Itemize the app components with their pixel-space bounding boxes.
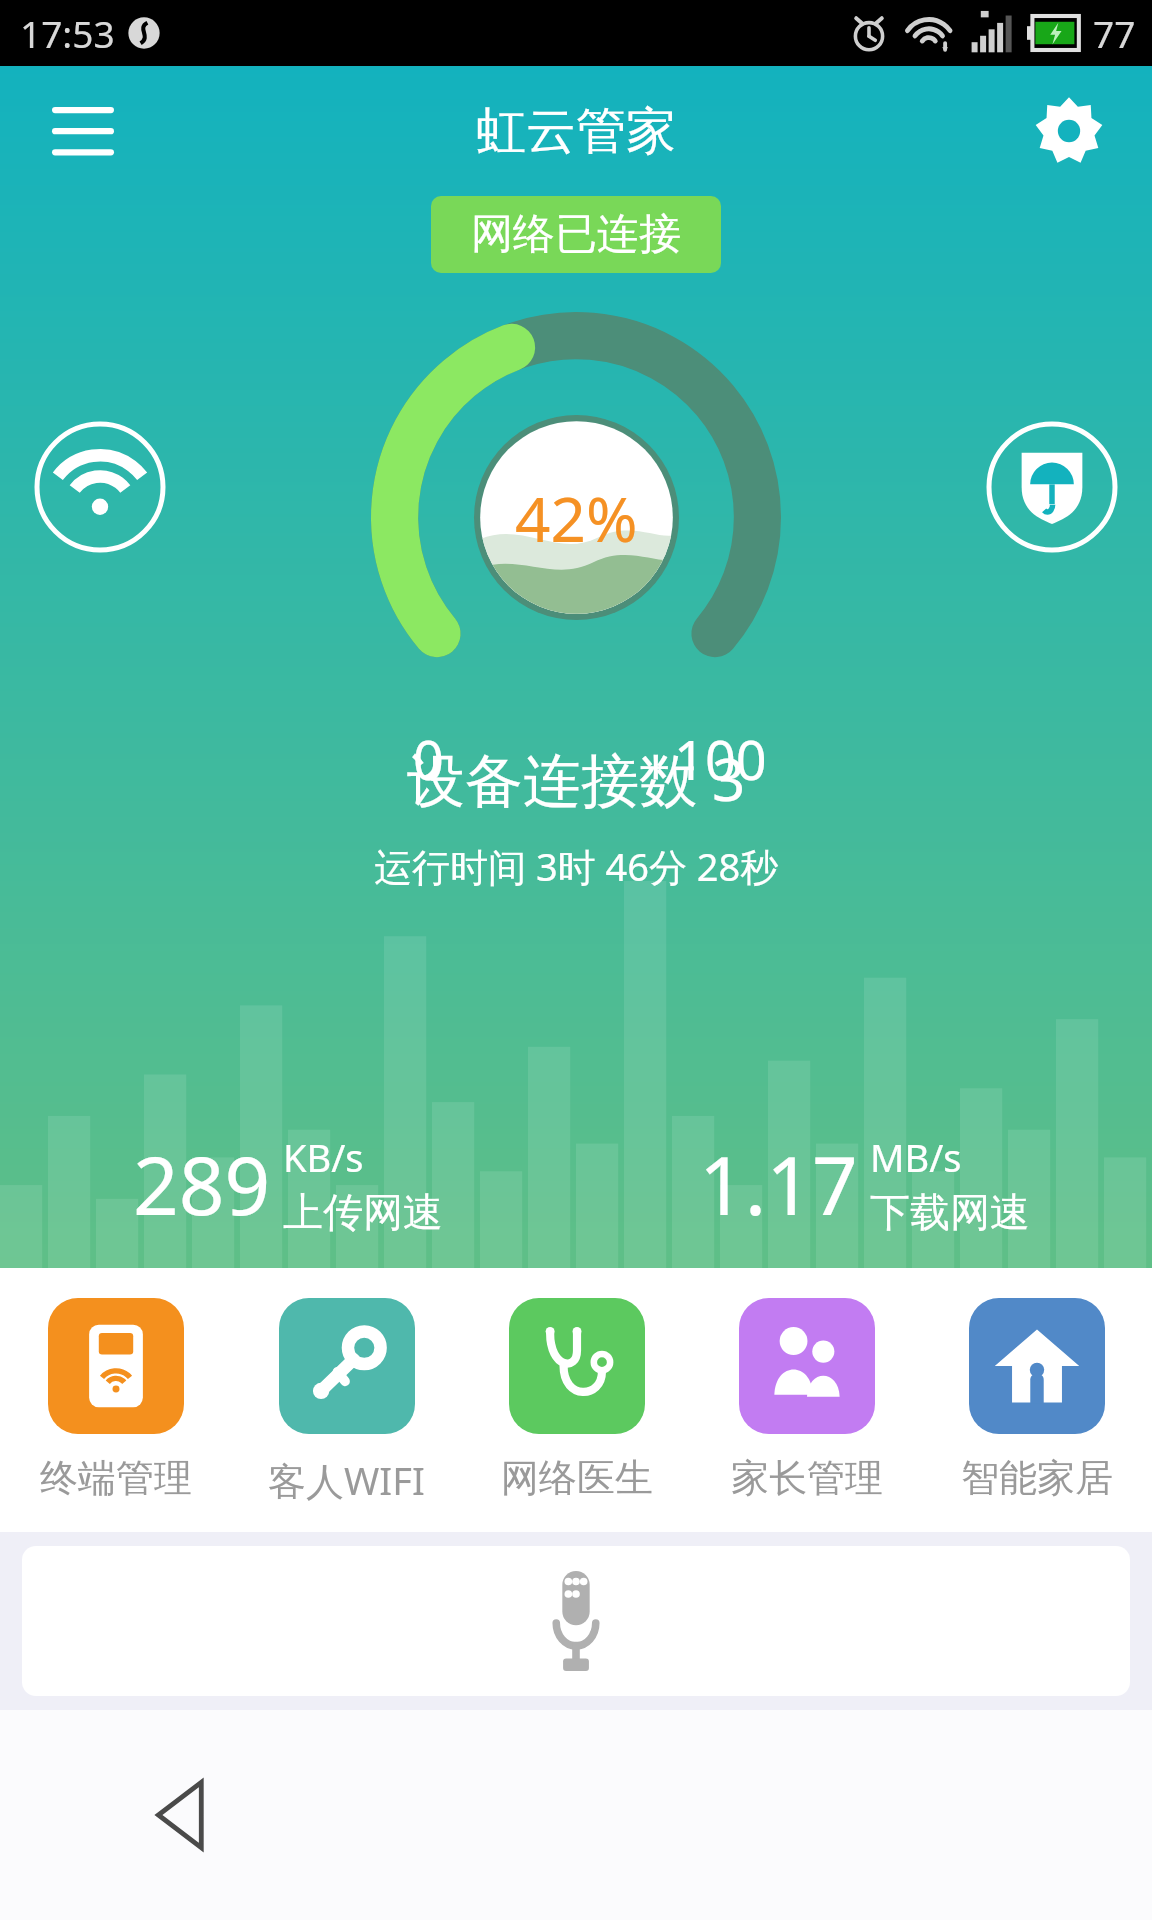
button[interactable]: Settings [1026, 88, 1112, 174]
staticText: 网络已连接 [471, 208, 681, 261]
staticText: 17:53 [20, 8, 115, 58]
staticText: MB/s [870, 1131, 962, 1183]
button[interactable]: Security [986, 421, 1118, 553]
staticText: 42% [515, 476, 638, 560]
button[interactable]: 网络已连接 [431, 196, 721, 273]
button[interactable]: 智能家居 [922, 1298, 1152, 1502]
staticText: 网络医生 [501, 1454, 653, 1502]
staticText: 家长管理 [731, 1454, 883, 1502]
staticText: 289 [133, 1129, 271, 1238]
staticText: 智能家居 [961, 1454, 1113, 1502]
button[interactable]: 家长管理 [692, 1298, 922, 1502]
staticText: 上传网速 [283, 1187, 443, 1237]
staticText: KB/s [283, 1131, 364, 1183]
button[interactable]: 网络医生 [462, 1298, 692, 1502]
button[interactable]: 客人WIFI [231, 1298, 462, 1506]
staticText: 1.17 [699, 1129, 858, 1238]
staticText: 设备连接数 3 [407, 739, 746, 818]
staticText: 下载网速 [870, 1187, 1030, 1237]
staticText: 77 [1093, 8, 1136, 58]
button[interactable]: Menu [40, 88, 126, 174]
staticText: 终端管理 [40, 1454, 192, 1502]
button[interactable]: WiFi settings [34, 421, 166, 553]
staticText: 运行时间 3时 46分 28秒 [374, 840, 779, 892]
button[interactable]: Back [130, 1760, 240, 1870]
button[interactable]: 终端管理 [0, 1298, 231, 1502]
staticText: 虹云管家 [476, 100, 676, 163]
staticText: 100 [674, 722, 767, 796]
button[interactable]: Voice input [22, 1546, 1130, 1696]
staticText: 客人WIFI [268, 1454, 425, 1506]
staticText: 0 [413, 722, 444, 796]
